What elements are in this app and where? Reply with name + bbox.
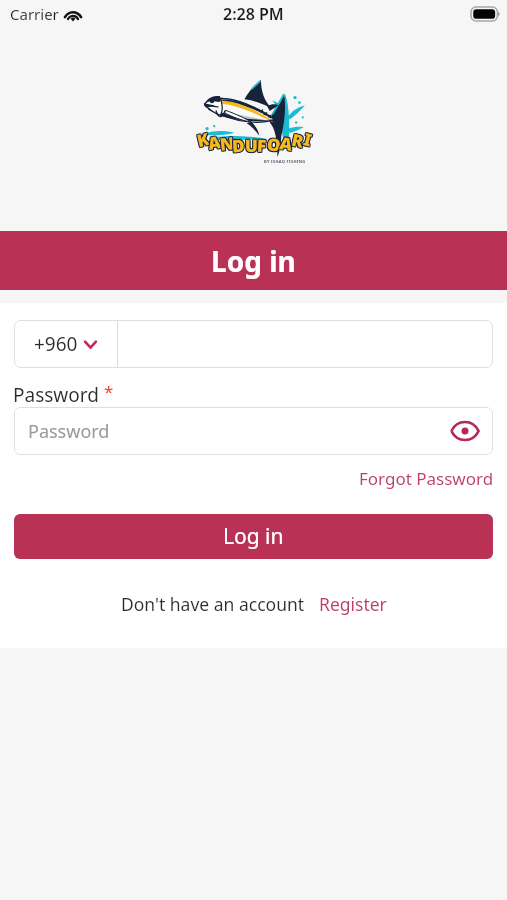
staticText: N (217, 130, 235, 155)
staticText: U (244, 134, 257, 157)
staticText: I (301, 126, 315, 151)
staticText: 2:28 PM (223, 3, 284, 25)
staticText: N (218, 131, 235, 156)
staticText: Password (13, 382, 99, 408)
staticText: N (219, 132, 236, 157)
staticText: U (245, 134, 258, 157)
staticText: F (256, 133, 267, 156)
staticText: A (278, 132, 294, 157)
staticText: Forgot Password (359, 467, 494, 490)
staticText: U (246, 135, 259, 158)
staticText: I (302, 129, 315, 153)
staticText: F (255, 134, 266, 157)
staticText: A (278, 131, 295, 156)
button[interactable]: Register (319, 592, 387, 616)
staticText: O (267, 131, 283, 156)
button[interactable]: Password (14, 407, 493, 455)
staticText: I (302, 127, 316, 151)
staticText: Password (28, 419, 110, 444)
staticText: O (266, 132, 282, 157)
staticText: D (230, 135, 245, 158)
staticText: K (195, 127, 212, 152)
staticText: A (207, 129, 224, 154)
staticText: F (255, 135, 266, 158)
staticText: I (302, 128, 316, 152)
staticText: I (301, 127, 315, 152)
staticText: D (232, 133, 247, 157)
staticText: D (230, 133, 245, 156)
staticText: BY ISHAQ FISHING (264, 159, 306, 164)
staticText: D (231, 133, 246, 156)
staticText: A (277, 130, 294, 155)
staticText: R (291, 127, 307, 152)
staticText: I (300, 127, 314, 151)
staticText: O (265, 133, 281, 158)
staticText: A (277, 131, 294, 156)
staticText: A (205, 130, 222, 155)
staticText: A (278, 130, 295, 155)
staticText: Register (319, 592, 387, 616)
staticText: N (219, 131, 236, 156)
staticText: A (277, 132, 294, 157)
staticText: A (205, 129, 222, 154)
staticText: I (300, 128, 313, 152)
staticText: A (206, 129, 223, 154)
staticText: R (289, 127, 305, 152)
staticText: K (193, 126, 210, 151)
staticText: F (257, 135, 268, 158)
staticText: K (195, 128, 212, 153)
staticText: R (291, 128, 307, 153)
button[interactable]: Log in (14, 514, 493, 559)
button[interactable]: Phone number (118, 320, 493, 368)
staticText: O (265, 132, 281, 157)
staticText: N (218, 130, 236, 155)
staticText: R (289, 128, 305, 153)
staticText: * (104, 380, 114, 403)
staticText: K (194, 126, 211, 151)
staticText: U (245, 133, 258, 156)
staticText: F (257, 134, 268, 157)
staticText: O (267, 132, 283, 157)
staticText: D (230, 134, 245, 157)
staticText: K (193, 127, 210, 152)
staticText: Carrier (10, 4, 59, 24)
staticText: I (301, 128, 314, 153)
staticText: F (256, 135, 267, 158)
staticText: I (301, 126, 314, 150)
staticText: D (232, 132, 247, 156)
button[interactable]: Forgot Password (359, 467, 494, 490)
button[interactable]: Select country code (14, 320, 117, 368)
staticText: F (255, 133, 266, 156)
staticText: A (207, 130, 224, 155)
staticText: A (206, 130, 223, 155)
staticText: N (220, 131, 237, 156)
staticText: O (267, 133, 283, 158)
staticText: D (231, 135, 246, 158)
staticText: Don't have an account (121, 592, 305, 616)
staticText: K (195, 126, 212, 151)
staticText: K (194, 128, 211, 153)
staticText: U (245, 135, 258, 158)
staticText: O (266, 131, 282, 156)
staticText: A (279, 131, 296, 156)
staticText: N (220, 132, 237, 157)
staticText: N (218, 132, 235, 157)
staticText: A (279, 132, 295, 157)
staticText: R (289, 129, 306, 154)
staticText: D (231, 134, 246, 157)
staticText: R (290, 127, 306, 152)
staticText: F (256, 134, 267, 157)
staticText: +960 (34, 331, 78, 357)
staticText: N (219, 130, 237, 155)
staticText: Log in (223, 522, 284, 551)
staticText: D (232, 134, 247, 158)
staticText: Log in (211, 242, 296, 280)
staticText: O (265, 131, 281, 156)
staticText: O (266, 133, 282, 158)
staticText: U (244, 135, 257, 158)
staticText: K (194, 127, 211, 152)
button[interactable]: Show password (449, 415, 481, 447)
staticText: A (205, 131, 222, 156)
staticText: A (279, 130, 296, 155)
staticText: R (288, 129, 305, 154)
